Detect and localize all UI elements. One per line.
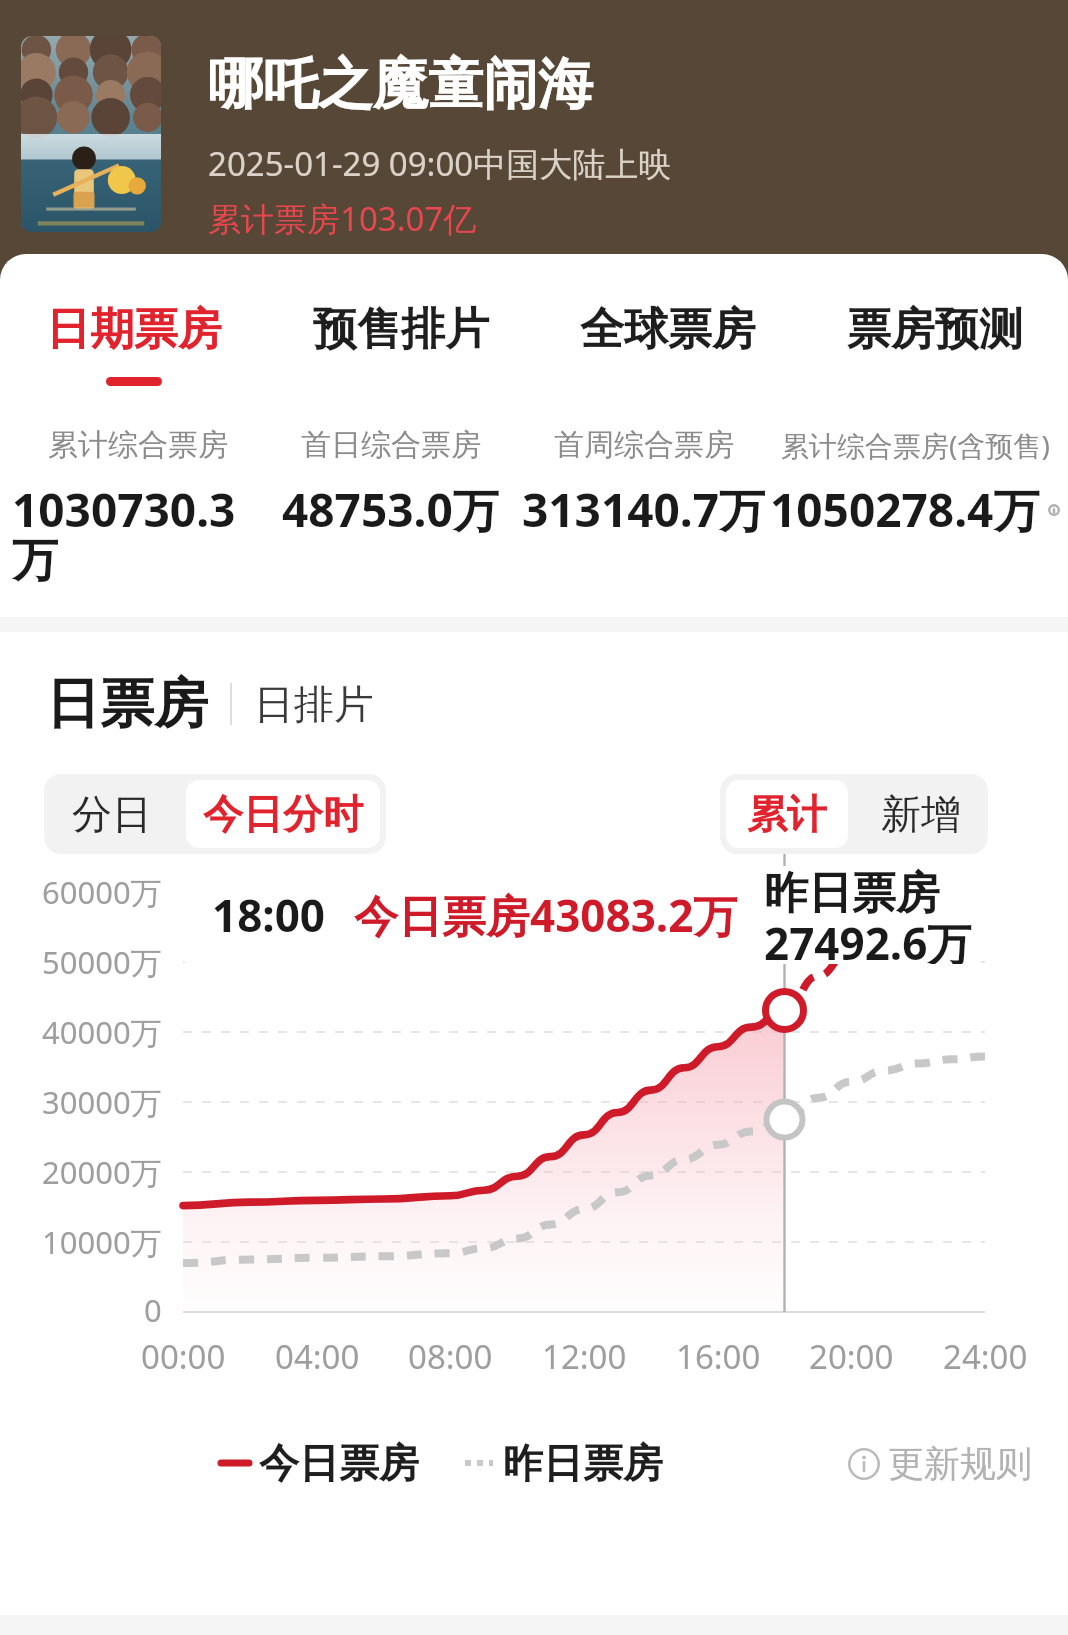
button[interactable]: 预售排片 [267, 280, 534, 398]
staticText: 313140.7万 [522, 478, 766, 541]
staticText: 全球票房 [580, 302, 756, 357]
staticText: 48753.0万 [282, 478, 499, 541]
button[interactable] [21, 36, 161, 232]
button[interactable]: 累计 [726, 780, 848, 848]
button[interactable]: 票房说明 [1048, 496, 1060, 524]
button[interactable]: 18:00 [176, 866, 986, 964]
staticText: 0 [144, 1289, 162, 1331]
staticText: 新增 [881, 789, 961, 839]
staticText: 累计综合票房 [48, 426, 228, 464]
staticText: 日票房 [46, 670, 208, 738]
button[interactable]: 日期票房 [0, 280, 267, 398]
button[interactable]: 日票房 [46, 670, 208, 738]
staticText: 日期票房 [46, 302, 222, 357]
staticText: 00:00 [141, 1334, 226, 1379]
button[interactable]: 新增 [860, 780, 982, 848]
button[interactable]: 分日 [50, 780, 174, 848]
staticText: 50000万 [42, 941, 162, 983]
staticText: 10000万 [42, 1221, 162, 1263]
staticText: 分日 [72, 789, 152, 839]
staticText: 20:00 [809, 1334, 894, 1379]
staticText: 日排片 [254, 679, 374, 729]
staticText: 18:00 [212, 885, 326, 945]
staticText: 20000万 [42, 1151, 162, 1193]
staticText: 1050278.4万 [770, 478, 1040, 541]
button[interactable]: 日排片 [254, 679, 374, 729]
staticText: 30000万 [42, 1081, 162, 1123]
staticText: 今日票房 [259, 1438, 419, 1488]
button[interactable]: 全球票房 [534, 280, 801, 398]
staticText: 2025-01-29 09:00中国大陆上映 [208, 141, 672, 186]
staticText: 更新规则 [888, 1441, 1032, 1486]
staticText: 昨日票房27492.6万 [764, 866, 986, 964]
staticText: 60000万 [42, 871, 162, 913]
button[interactable]: 首日综合票房 [264, 426, 517, 541]
staticText: 16:00 [676, 1334, 761, 1379]
staticText: 24:00 [943, 1334, 1028, 1379]
staticText: 1030730.3万 [12, 478, 264, 590]
staticText: 08:00 [408, 1334, 493, 1379]
staticText: 40000万 [42, 1011, 162, 1053]
button[interactable]: 昨日票房 [465, 1438, 663, 1488]
button[interactable]: 累计综合票房 [12, 426, 264, 590]
staticText: 今日票房43083.2万 [354, 885, 738, 945]
staticText: 首日综合票房 [301, 426, 481, 464]
button[interactable]: 今日票房 [221, 1438, 419, 1488]
staticText: 累计综合票房(含预售) [781, 426, 1050, 464]
staticText: 首周综合票房 [554, 426, 734, 464]
staticText: 累计 [747, 789, 827, 839]
button[interactable]: 今日分时 [186, 780, 380, 848]
button[interactable]: 累计综合票房(含预售) [770, 426, 1060, 541]
staticText: 哪吒之魔童闹海 [208, 50, 593, 119]
staticText: 04:00 [275, 1334, 360, 1379]
button[interactable]: 首周综合票房 [517, 426, 770, 541]
staticText: 昨日票房 [503, 1438, 663, 1488]
staticText: 12:00 [542, 1334, 627, 1379]
staticText: 票房预测 [847, 302, 1023, 357]
staticText: 预售排片 [313, 302, 489, 357]
button[interactable]: 更新规则 [848, 1441, 1032, 1486]
staticText: 今日分时 [203, 789, 363, 839]
staticText: 累计票房103.07亿 [208, 196, 477, 241]
button[interactable]: 票房预测 [801, 280, 1068, 398]
